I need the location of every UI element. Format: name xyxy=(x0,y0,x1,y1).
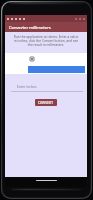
staticText: Run the application on demo. Enter a val… xyxy=(13,35,79,47)
staticText: Converter millimeters xyxy=(9,25,51,30)
button[interactable]: Home xyxy=(36,180,57,181)
staticText: CONVERT xyxy=(38,101,54,105)
button[interactable]: Enter inches xyxy=(11,84,83,92)
button[interactable]: CONVERT xyxy=(35,99,57,106)
staticText: Enter inches xyxy=(17,84,37,89)
